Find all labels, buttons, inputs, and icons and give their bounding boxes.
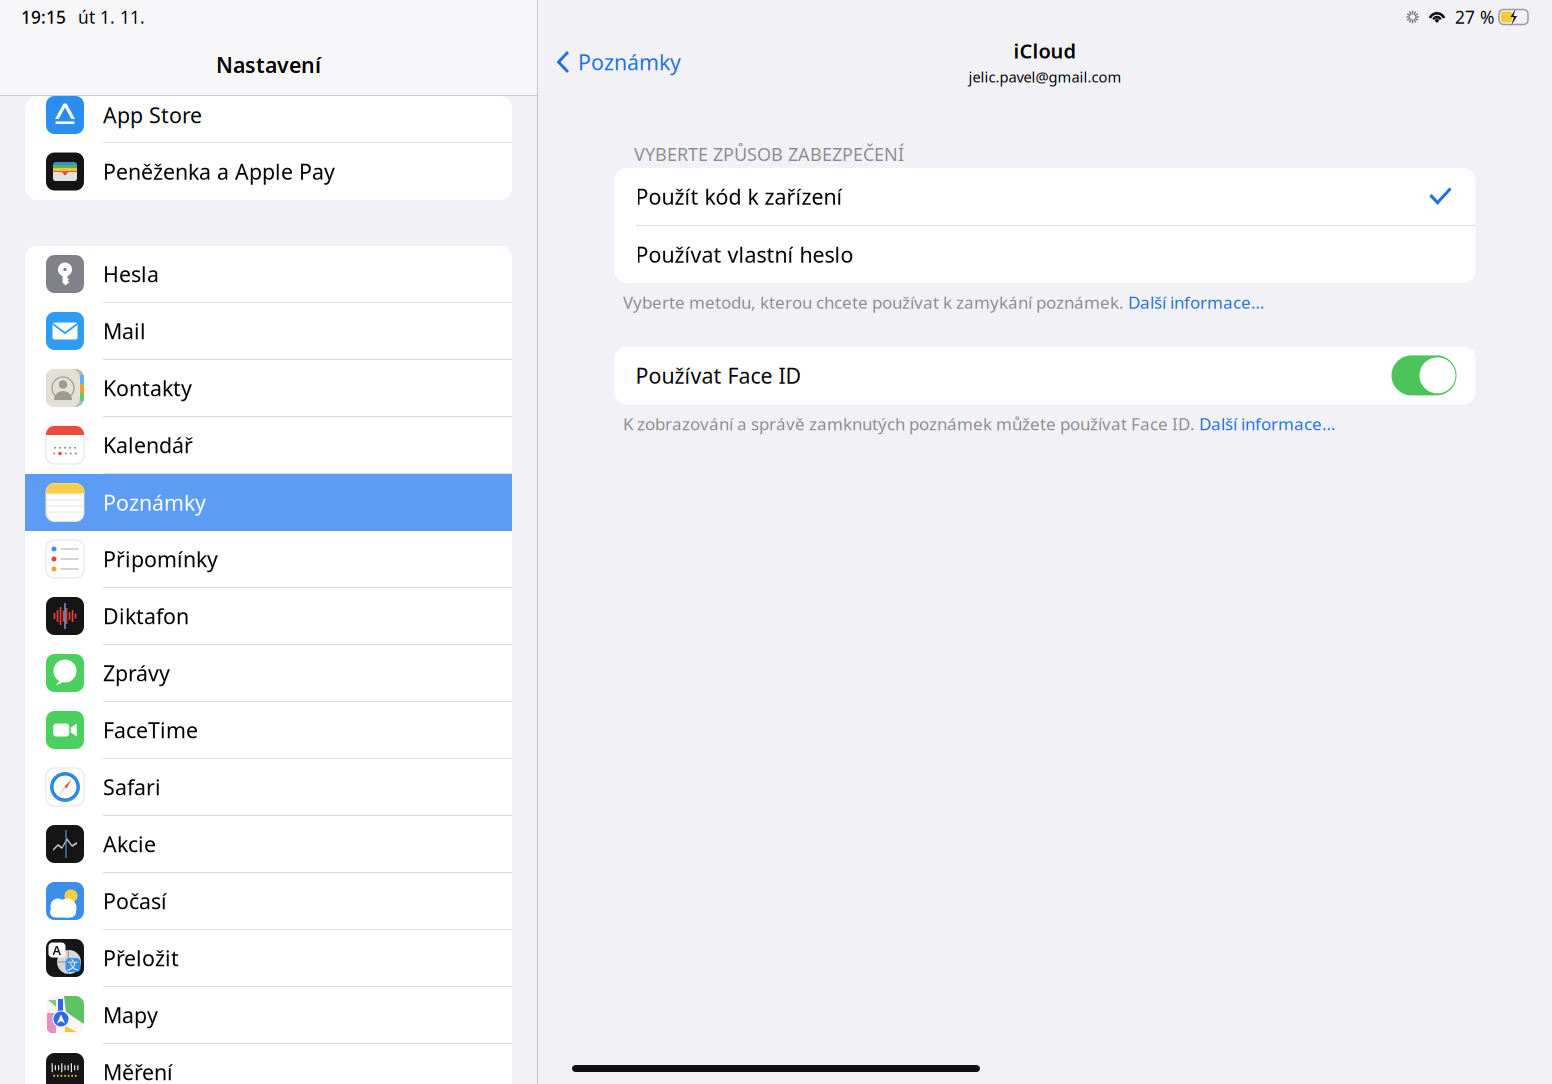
staticText: Používat vlastní heslo	[635, 240, 853, 268]
staticText: Další informace…	[1128, 291, 1264, 313]
button[interactable]: Diktafon	[25, 588, 512, 645]
staticText: Mapy	[103, 1001, 158, 1029]
staticText: App Store	[103, 101, 202, 129]
staticText: Akcie	[103, 830, 156, 858]
staticText: Peněženka a Apple Pay	[103, 157, 335, 186]
button[interactable]: Mapy	[25, 987, 512, 1044]
staticText: Diktafon	[103, 602, 189, 630]
button[interactable]: Připomínky	[25, 531, 512, 588]
button[interactable]: FaceTime	[25, 702, 512, 759]
button[interactable]: App Store	[25, 96, 512, 134]
staticText: 27 %	[1455, 5, 1494, 28]
staticText: Hesla	[103, 260, 159, 288]
button[interactable]: Poznámky	[538, 40, 691, 84]
button[interactable]: Další informace…	[1128, 291, 1264, 313]
button[interactable]: Kontakty	[25, 360, 512, 417]
button[interactable]: Zprávy	[25, 645, 512, 702]
staticText: jelic.pavel@gmail.com	[968, 67, 1121, 86]
staticText: 19:15	[21, 5, 66, 28]
button[interactable]: Další informace…	[1199, 412, 1335, 435]
staticText: Měření	[103, 1058, 173, 1084]
button[interactable]: Akcie	[25, 816, 512, 873]
staticText: Mail	[103, 317, 146, 345]
staticText: iCloud	[1013, 37, 1076, 64]
staticText: Kalendář	[103, 431, 193, 459]
staticText: Vyberte metodu, kterou chcete používat k…	[623, 291, 1128, 313]
staticText: Safari	[103, 773, 161, 801]
button[interactable]: Mail	[25, 303, 512, 360]
staticText: VYBERTE ZPŮSOB ZABEZPEČENÍ	[634, 142, 904, 166]
button[interactable]: Použít kód k zařízení	[614, 168, 1475, 225]
button[interactable]: Používat Face ID	[1391, 355, 1456, 395]
staticText: Připomínky	[103, 545, 218, 573]
staticText: FaceTime	[103, 716, 198, 744]
staticText: Počasí	[103, 887, 167, 915]
staticText: Nastavení	[216, 51, 321, 79]
button[interactable]: Safari	[25, 759, 512, 816]
staticText: út 1. 11.	[78, 5, 145, 28]
button[interactable]: Poznámky	[25, 474, 512, 531]
staticText: Další informace…	[1199, 412, 1335, 435]
staticText: Použít kód k zařízení	[635, 182, 842, 210]
staticText: Používat Face ID	[635, 361, 801, 389]
staticText: Přeložit	[103, 944, 179, 972]
staticText: K zobrazování a správě zamknutých poznám…	[623, 412, 1199, 435]
button[interactable]: Peněženka a Apple Pay	[25, 143, 512, 200]
staticText: 文	[67, 958, 79, 972]
staticText: Zprávy	[103, 659, 170, 687]
button[interactable]: Kalendář	[25, 417, 512, 474]
staticText: Poznámky	[578, 48, 681, 76]
button[interactable]: Počasí	[25, 873, 512, 930]
button[interactable]: Hesla	[25, 246, 512, 303]
button[interactable]: Používat vlastní heslo	[614, 226, 1475, 283]
staticText: A	[52, 942, 61, 958]
button[interactable]: A	[25, 930, 512, 987]
staticText: Kontakty	[103, 374, 192, 402]
staticText: Poznámky	[103, 488, 206, 517]
button[interactable]: Měření	[25, 1044, 512, 1084]
